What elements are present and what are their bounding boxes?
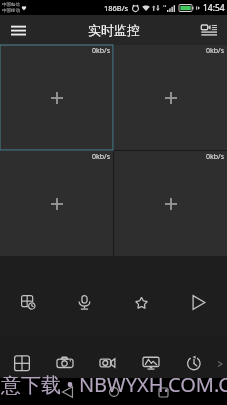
button[interactable]: Add to favourites [113,256,170,336]
button[interactable]: Device list [191,15,227,45]
button[interactable]: Split screen layout [0,336,43,378]
staticText: 186B/s [104,3,129,13]
staticText: 0kb/s [92,46,111,56]
staticText: 0kb/s [92,152,111,162]
button[interactable]: 0kb/s [0,45,113,150]
staticText: 中国电信 [2,2,20,8]
button[interactable]: More options [213,336,227,378]
button[interactable]: Record video [86,336,129,378]
button[interactable]: 0kb/s [114,151,227,256]
staticText: 意下载 • NBWYXH.COM.C [1,371,227,398]
button[interactable]: Play [170,256,227,336]
staticText: 0kb/s [206,152,225,162]
button[interactable]: Playback history [172,336,215,378]
staticText: 实时监控 [88,22,140,38]
button[interactable]: Image quality [129,336,172,378]
staticText: 中国移动 [2,8,20,14]
button[interactable]: Take snapshot [43,336,86,378]
staticText: 14:54 [203,2,225,14]
button[interactable]: Open navigation menu [0,15,36,45]
button[interactable]: 0kb/s [0,151,113,256]
button[interactable]: Home [102,380,126,404]
button[interactable]: Change layout [0,256,56,336]
button[interactable]: Recent apps [151,380,175,404]
button[interactable]: 0kb/s [114,45,227,150]
button[interactable]: Talk back microphone [56,256,113,336]
staticText: 0kb/s [206,46,225,56]
button[interactable]: Back [55,380,79,404]
